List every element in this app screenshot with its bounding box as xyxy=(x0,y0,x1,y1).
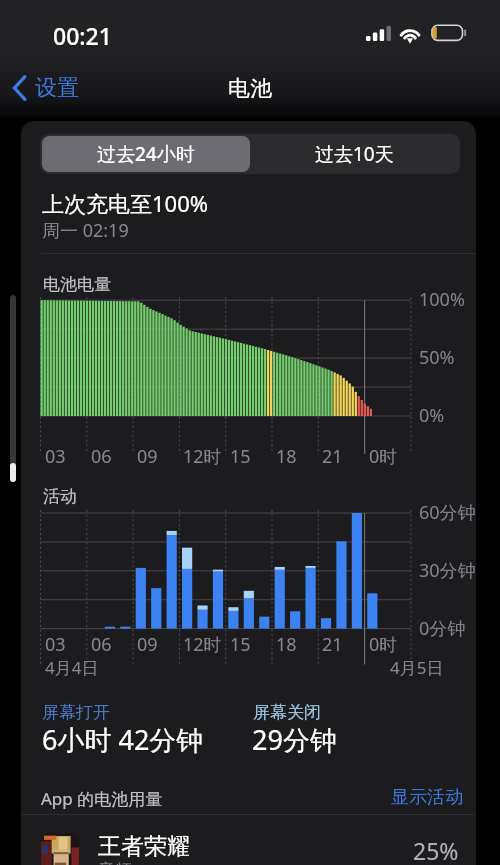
button[interactable]: 显示活动 xyxy=(391,786,463,809)
staticText: 15 xyxy=(230,444,251,469)
staticText: 0时 xyxy=(369,632,398,657)
other: Wi-Fi xyxy=(398,23,424,43)
staticText: 03 xyxy=(45,632,66,657)
staticText: 21 xyxy=(322,632,343,657)
staticText: 0时 xyxy=(369,444,398,469)
staticText: 09 xyxy=(137,632,158,657)
staticText: 4月5日 xyxy=(390,656,444,679)
staticText: 50% xyxy=(419,345,455,370)
staticText: 12时 xyxy=(183,444,222,469)
staticText: 12时 xyxy=(183,632,222,657)
staticText: 03 xyxy=(45,444,66,469)
button[interactable]: 设置 xyxy=(7,70,87,106)
staticText: 29分钟 xyxy=(252,721,337,758)
staticText: 音频 xyxy=(98,860,132,865)
staticText: 18 xyxy=(276,632,297,657)
staticText: 15 xyxy=(230,632,251,657)
staticText: 电池电量 xyxy=(43,274,111,295)
staticText: 上次充电至100% xyxy=(42,188,209,218)
other: Battery xyxy=(430,22,468,44)
staticText: 00:21 xyxy=(53,20,112,51)
staticText: 过去24小时 xyxy=(97,141,195,167)
staticText: 0% xyxy=(419,403,445,428)
button[interactable]: 王者荣耀 xyxy=(21,815,476,865)
staticText: 60分钟 xyxy=(419,500,476,525)
staticText: 09 xyxy=(137,444,158,469)
staticText: 21 xyxy=(322,444,343,469)
button[interactable]: 过去10天 xyxy=(250,136,458,172)
staticText: 电池 xyxy=(228,75,272,103)
staticText: 屏幕关闭 xyxy=(253,702,321,723)
staticText: 王者荣耀 xyxy=(98,832,190,861)
staticText: 06 xyxy=(91,632,112,657)
staticText: 周一 02:19 xyxy=(42,218,129,243)
staticText: 0分钟 xyxy=(419,616,466,641)
staticText: 过去10天 xyxy=(315,141,394,167)
staticText: 屏幕打开 xyxy=(42,702,110,723)
staticText: 活动 xyxy=(43,486,77,507)
staticText: 100% xyxy=(419,287,465,312)
staticText: 30分钟 xyxy=(419,558,476,583)
staticText: 6小时 42分钟 xyxy=(42,721,204,758)
staticText: 显示活动 xyxy=(391,786,463,809)
staticText: 25% xyxy=(413,835,459,865)
button[interactable]: 过去24小时 xyxy=(42,136,250,172)
staticText: 06 xyxy=(91,444,112,469)
staticText: 4月4日 xyxy=(45,656,99,679)
staticText: 18 xyxy=(276,444,297,469)
staticText: 设置 xyxy=(35,74,79,102)
staticText: App 的电池用量 xyxy=(41,787,163,810)
